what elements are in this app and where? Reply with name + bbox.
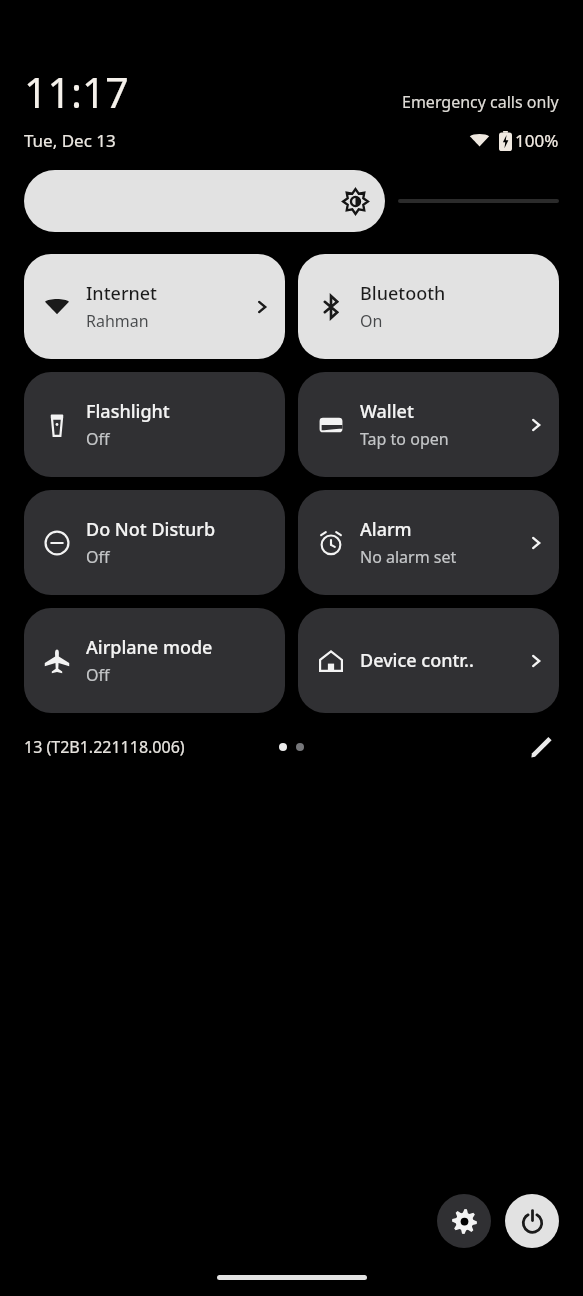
staticText: Device contr.. [360,648,474,673]
staticText: Internet [86,281,158,306]
button[interactable]: Flashlight [24,372,285,477]
staticText: Tue, Dec 13 [24,129,116,152]
button[interactable]: Airplane mode [24,608,285,713]
staticText: Alarm [360,517,412,542]
button[interactable]: Settings [437,1194,491,1248]
button[interactable]: Wallet [298,372,559,477]
staticText: 13 (T2B1.221118.006) [24,736,185,758]
staticText: Tap to open [360,428,449,450]
staticText: Emergency calls only [402,91,559,113]
staticText: Off [86,428,110,450]
staticText: Rahman [86,310,149,332]
button[interactable]: Brightness [24,170,385,232]
button[interactable]: Bluetooth [298,254,559,359]
staticText: Off [86,546,110,568]
staticText: 100% [515,129,559,152]
staticText: Do Not Disturb [86,517,216,542]
staticText: 11:17 [24,64,129,120]
staticText: No alarm set [360,546,457,568]
button[interactable]: Alarm [298,490,559,595]
button[interactable]: Internet [24,254,285,359]
button[interactable]: Do Not Disturb [24,490,285,595]
staticText: Bluetooth [360,281,446,306]
button[interactable]: Edit tiles [523,729,559,765]
button[interactable]: Device contr.. [298,608,559,713]
staticText: Flashlight [86,399,170,424]
staticText: Wallet [360,399,414,424]
staticText: On [360,310,383,332]
button[interactable]: Power [505,1194,559,1248]
staticText: Airplane mode [86,635,213,660]
staticText: Off [86,664,110,686]
